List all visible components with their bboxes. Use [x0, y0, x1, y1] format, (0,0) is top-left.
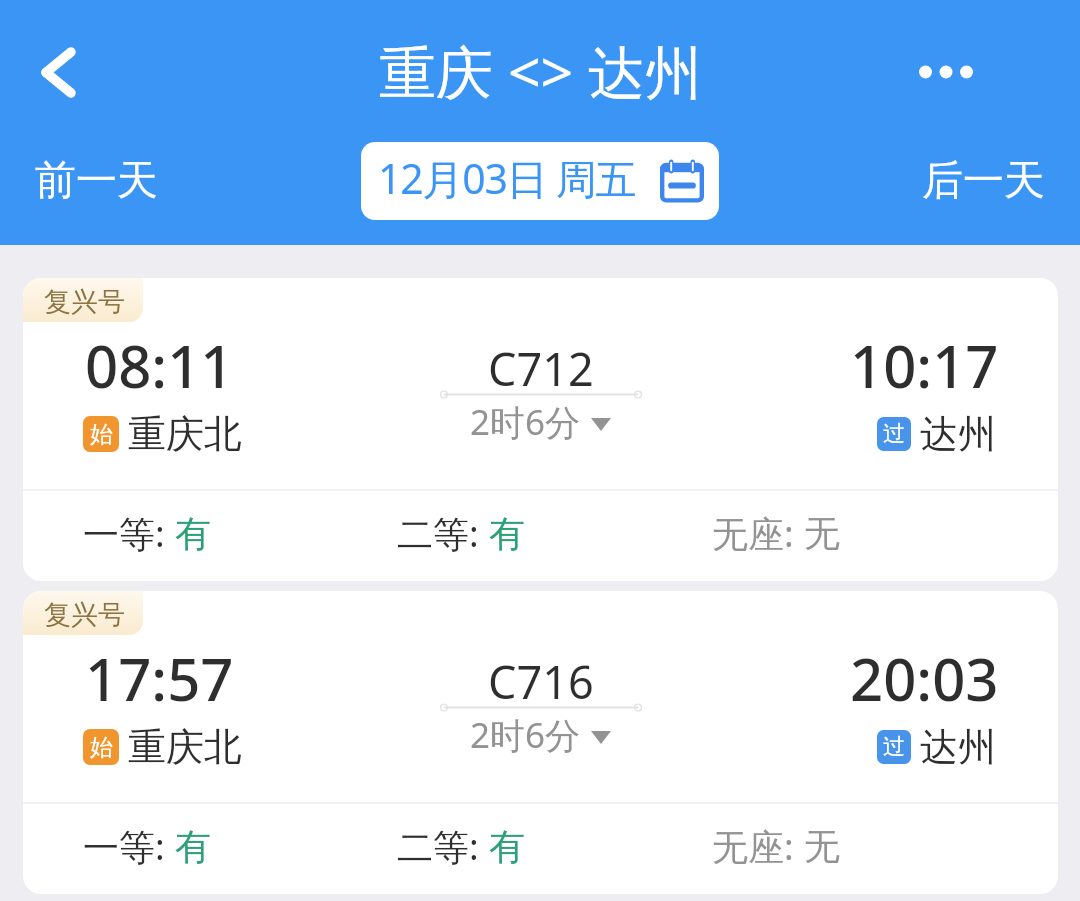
button[interactable]: 前一天: [6, 140, 186, 222]
other: Pick date: [660, 161, 704, 204]
staticText: 过: [883, 420, 905, 448]
staticText: 二等:: [397, 509, 489, 558]
staticText: 二等:: [397, 822, 489, 871]
button[interactable]: 一等:: [83, 810, 211, 882]
staticText: 08:11: [85, 326, 234, 405]
staticText: 无座:: [712, 822, 804, 871]
button[interactable]: 12月03日 周五: [361, 142, 719, 220]
staticText: 有: [489, 511, 525, 556]
staticText: 10:17: [850, 326, 999, 405]
staticText: 始: [90, 420, 113, 449]
staticText: 有: [175, 824, 211, 869]
staticText: 复兴号: [44, 285, 125, 319]
button[interactable]: 后一天: [893, 140, 1073, 222]
staticText: 无: [804, 511, 840, 556]
button[interactable]: 复兴号: [23, 278, 1058, 581]
button[interactable]: 二等:: [397, 810, 525, 882]
staticText: 2时6分: [470, 711, 581, 759]
button[interactable]: 重庆 <> 达州: [330, 26, 750, 116]
staticText: 前一天: [35, 155, 158, 207]
staticText: 后一天: [922, 155, 1045, 207]
staticText: 有: [175, 511, 211, 556]
button[interactable]: 无座:: [712, 497, 840, 569]
staticText: 重庆 <> 达州: [379, 32, 702, 110]
button[interactable]: 二等:: [397, 497, 525, 569]
staticText: 一等:: [83, 822, 175, 871]
staticText: 2时6分: [470, 398, 581, 446]
staticText: C712: [488, 338, 594, 399]
staticText: 过: [883, 733, 905, 761]
staticText: 一等:: [83, 509, 175, 558]
staticText: 12月03日 周五: [378, 150, 636, 206]
staticText: 无: [804, 824, 840, 869]
button[interactable]: 无座:: [712, 810, 840, 882]
staticText: 无座:: [712, 509, 804, 558]
staticText: 始: [90, 733, 113, 762]
staticText: 20:03: [850, 639, 999, 718]
staticText: 重庆北: [128, 723, 242, 771]
button[interactable]: Back: [15, 29, 101, 115]
button[interactable]: More options: [910, 38, 982, 106]
staticText: 达州: [920, 410, 996, 458]
button[interactable]: 复兴号: [23, 591, 1058, 894]
button[interactable]: 2时6分: [470, 711, 611, 759]
staticText: 重庆北: [128, 410, 242, 458]
staticText: 复兴号: [44, 598, 125, 632]
staticText: 有: [489, 824, 525, 869]
button[interactable]: 2时6分: [470, 398, 611, 446]
staticText: 17:57: [85, 639, 234, 718]
button[interactable]: 一等:: [83, 497, 211, 569]
staticText: C716: [488, 651, 594, 712]
staticText: 达州: [920, 723, 996, 771]
